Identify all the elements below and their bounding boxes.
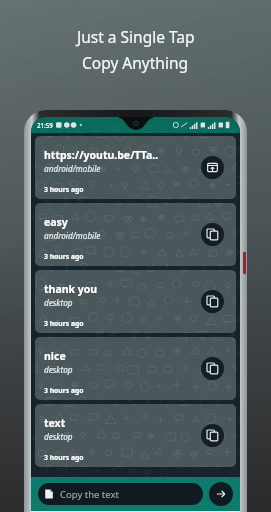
- button[interactable]: Copy: [201, 223, 224, 246]
- staticText: thank you: [44, 282, 98, 296]
- button[interactable]: Copy the text: [38, 483, 203, 505]
- button[interactable]: Send: [209, 482, 233, 506]
- staticText: android/mobile: [44, 230, 101, 241]
- staticText: nice: [44, 349, 66, 363]
- staticText: desktop: [44, 297, 73, 308]
- staticText: Just a Single Tap: [77, 26, 195, 47]
- staticText: 3 hours ago: [44, 252, 84, 261]
- staticText: 21:59: [37, 121, 53, 129]
- staticText: 3 hours ago: [44, 185, 84, 194]
- button[interactable]: https://youtu.be/TTa..: [35, 136, 236, 199]
- button[interactable]: text: [35, 404, 236, 467]
- button[interactable]: Copy: [201, 357, 224, 380]
- button[interactable]: Copy: [201, 290, 224, 313]
- staticText: Copy the text: [60, 488, 119, 501]
- staticText: desktop: [44, 364, 73, 375]
- button[interactable]: easy: [35, 203, 236, 266]
- staticText: 3 hours ago: [44, 319, 84, 328]
- staticText: Copy Anything: [82, 52, 189, 73]
- staticText: https://youtu.be/TTa..: [44, 148, 159, 162]
- button[interactable]: nice: [35, 337, 236, 400]
- button[interactable]: Open link: [201, 156, 224, 179]
- staticText: desktop: [44, 431, 73, 442]
- staticText: text: [44, 416, 66, 430]
- button[interactable]: Copy: [201, 424, 224, 447]
- staticText: 3 hours ago: [44, 386, 84, 395]
- staticText: easy: [44, 215, 68, 229]
- button[interactable]: thank you: [35, 270, 236, 333]
- staticText: android/mobile: [44, 163, 101, 174]
- staticText: 3 hours ago: [44, 453, 84, 462]
